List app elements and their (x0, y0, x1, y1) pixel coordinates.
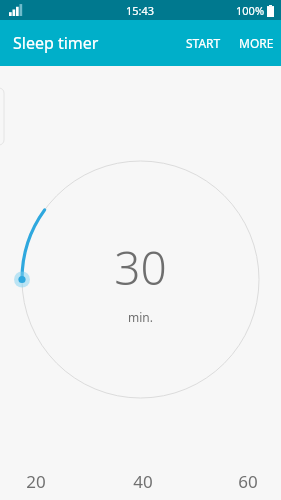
staticText: START (186, 35, 221, 51)
staticText: 40 (133, 470, 153, 493)
staticText: 60 (238, 470, 258, 493)
button[interactable]: MORE (230, 25, 281, 61)
staticText: min. (128, 309, 153, 325)
button[interactable]: START (177, 25, 230, 61)
button[interactable]: 40 (131, 470, 155, 493)
staticText: 15:43 (126, 3, 155, 18)
staticText: MORE (239, 35, 274, 51)
staticText: 30 (114, 236, 167, 299)
staticText: Sleep timer (13, 32, 99, 54)
button[interactable]: 60 (236, 470, 260, 493)
staticText: 100% (236, 3, 265, 18)
staticText: 20 (26, 470, 46, 493)
button[interactable]: 20 (24, 470, 48, 493)
